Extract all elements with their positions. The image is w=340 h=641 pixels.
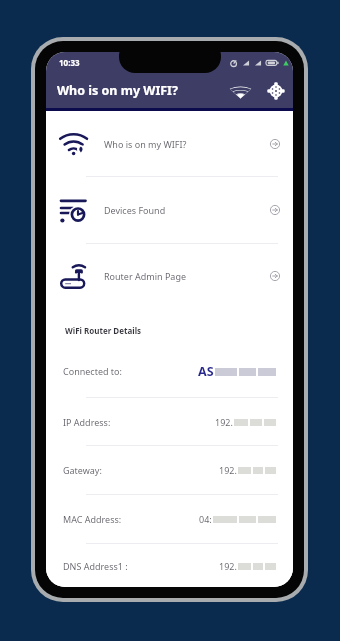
- staticText: WiFi Router Details: [65, 325, 142, 336]
- staticText: IP Address:: [63, 416, 111, 428]
- button[interactable]: WiFi: [229, 80, 251, 102]
- staticText: Devices Found: [104, 204, 166, 216]
- button[interactable]: Router Admin Page: [46, 244, 293, 308]
- staticText: Router Admin Page: [104, 270, 187, 282]
- staticText: 192.: [215, 416, 233, 428]
- staticText: Who is on my WIFI?: [57, 82, 178, 99]
- staticText: Connected to:: [63, 365, 122, 377]
- staticText: AS: [198, 363, 214, 380]
- button[interactable]: Who is on my WIFI?: [46, 111, 293, 176]
- staticText: 192.: [219, 560, 237, 572]
- button[interactable]: Settings: [265, 80, 287, 102]
- staticText: Gateway:: [63, 464, 102, 476]
- staticText: 192.: [219, 464, 237, 476]
- staticText: MAC Address:: [63, 513, 122, 525]
- staticText: DNS Address1 :: [63, 560, 128, 572]
- staticText: 10:33: [59, 57, 80, 68]
- staticText: 04:: [199, 513, 212, 525]
- button[interactable]: Devices Found: [46, 177, 293, 243]
- staticText: Who is on my WIFI?: [104, 138, 187, 150]
